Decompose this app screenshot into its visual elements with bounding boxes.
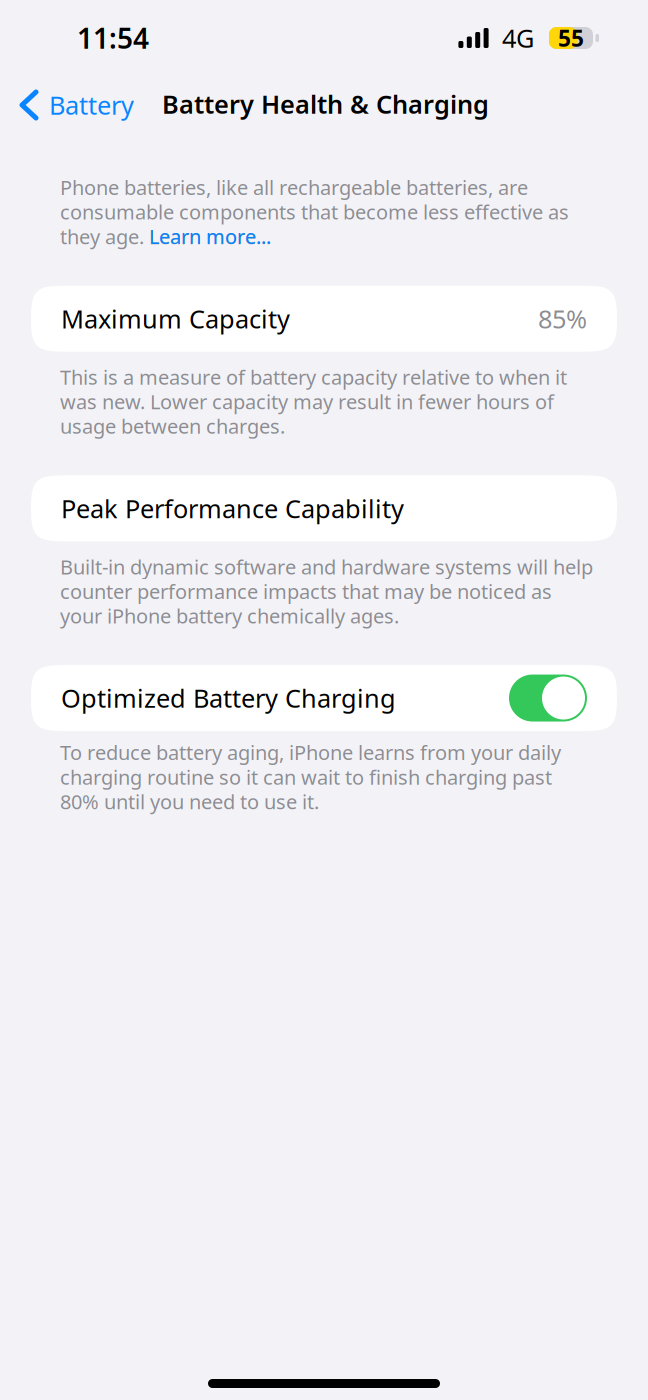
staticText: To reduce battery aging, iPhone learns f…: [60, 739, 561, 815]
staticText: Peak Performance Capability: [61, 491, 404, 525]
button[interactable]: Maximum Capacity: [0, 286, 648, 352]
staticText: 4G: [502, 21, 534, 55]
button[interactable]: Battery: [0, 78, 146, 132]
button[interactable]: Learn more...: [149, 223, 271, 250]
staticText: Battery: [49, 88, 134, 122]
staticText: Built-in dynamic software and hardware s…: [60, 553, 593, 629]
staticText: Phone batteries, like all rechargeable b…: [60, 174, 569, 250]
button[interactable]: Peak Performance Capability: [0, 475, 648, 541]
staticText: 11:54: [77, 19, 149, 57]
staticText: Battery Health & Charging: [162, 87, 489, 121]
button[interactable]: Optimized Battery Charging: [509, 674, 587, 721]
staticText: Optimized Battery Charging: [61, 681, 396, 715]
staticText: 55: [558, 23, 584, 53]
staticText: Maximum Capacity: [61, 302, 290, 335]
staticText: Learn more...: [149, 223, 271, 250]
staticText: This is a measure of battery capacity re…: [60, 364, 567, 439]
staticText: 85%: [538, 302, 587, 335]
staticText: they age.: [60, 223, 149, 250]
